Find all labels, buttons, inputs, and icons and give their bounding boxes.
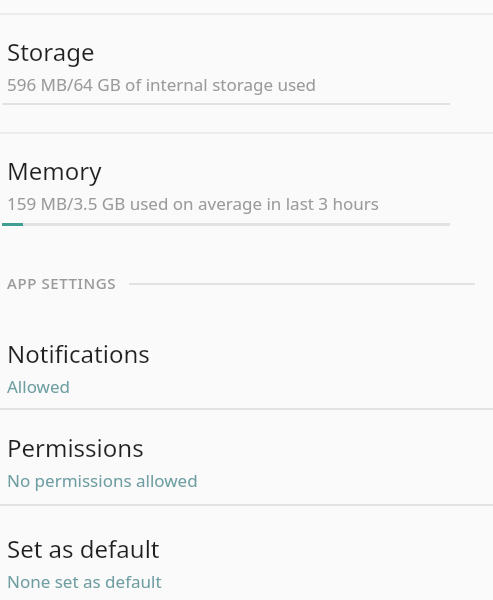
staticText: APP SETTINGS	[7, 273, 117, 293]
staticText: No permissions allowed	[7, 469, 198, 492]
staticText: 159 MB/3.5 GB used on average in last 3 …	[7, 192, 379, 215]
button[interactable]: Notifications	[0, 320, 493, 408]
staticText: Memory	[7, 154, 102, 187]
staticText: Set as default	[7, 532, 160, 565]
staticText: Notifications	[7, 337, 150, 370]
button[interactable]: Set as default	[0, 506, 493, 600]
staticText: Storage	[7, 35, 95, 68]
staticText: None set as default	[7, 570, 162, 593]
staticText: Allowed	[7, 375, 70, 398]
button[interactable]: Permissions	[0, 410, 493, 505]
staticText: Permissions	[7, 431, 144, 464]
button[interactable]: Storage	[0, 16, 493, 100]
staticText: 596 MB/64 GB of internal storage used	[7, 73, 317, 96]
button[interactable]: Memory	[0, 136, 493, 222]
